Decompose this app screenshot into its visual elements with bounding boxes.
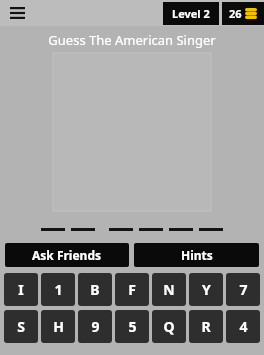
- staticText: H: [53, 317, 64, 336]
- staticText: S: [17, 317, 25, 336]
- button[interactable]: B: [78, 273, 112, 306]
- staticText: 26: [229, 6, 242, 21]
- staticText: Hints: [181, 247, 213, 263]
- staticText: 1: [54, 280, 63, 299]
- button[interactable]: R: [189, 310, 223, 343]
- staticText: N: [163, 280, 175, 299]
- button[interactable]: Y: [189, 273, 223, 306]
- button[interactable]: Menu: [6, 2, 28, 24]
- button[interactable]: F: [115, 273, 149, 306]
- button[interactable]: H: [41, 310, 75, 343]
- staticText: 9: [91, 317, 100, 336]
- button[interactable]: S: [4, 310, 38, 343]
- staticText: Q: [163, 317, 175, 336]
- staticText: Level 2: [172, 6, 210, 21]
- button[interactable]: 7: [226, 273, 260, 306]
- button[interactable]: 9: [78, 310, 112, 343]
- staticText: Guess The American Singer: [48, 31, 216, 49]
- button[interactable]: Ask Friends: [5, 243, 129, 267]
- button[interactable]: Hints: [134, 243, 259, 267]
- button[interactable]: 26: [222, 2, 264, 25]
- staticText: Y: [202, 280, 211, 299]
- button[interactable]: 1: [41, 273, 75, 306]
- button[interactable]: Level 2: [163, 2, 219, 25]
- staticText: F: [128, 280, 136, 299]
- staticText: 5: [128, 317, 137, 336]
- staticText: I: [18, 280, 24, 299]
- staticText: 4: [239, 317, 248, 336]
- button[interactable]: N: [152, 273, 186, 306]
- staticText: Ask Friends: [32, 247, 102, 263]
- button[interactable]: 5: [115, 310, 149, 343]
- staticText: 7: [239, 280, 248, 299]
- button[interactable]: Q: [152, 310, 186, 343]
- button[interactable]: I: [4, 273, 38, 306]
- staticText: R: [201, 317, 211, 336]
- button[interactable]: 4: [226, 310, 260, 343]
- staticText: B: [90, 280, 100, 299]
